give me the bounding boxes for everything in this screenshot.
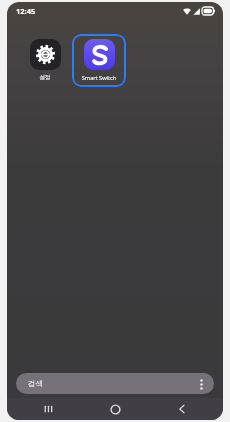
button[interactable]: Home bbox=[89, 398, 141, 420]
staticText: 12:45 bbox=[16, 6, 36, 16]
staticText: 설정 bbox=[20, 74, 70, 81]
button[interactable]: Recent apps bbox=[22, 398, 74, 420]
button[interactable]: Smart Switch bbox=[72, 34, 126, 87]
staticText: Smart Switch bbox=[74, 74, 124, 82]
button[interactable]: More options bbox=[193, 376, 209, 392]
staticText: 검색 bbox=[28, 379, 43, 388]
button[interactable]: 검색 bbox=[16, 373, 214, 394]
button[interactable]: Back bbox=[156, 398, 208, 420]
button[interactable]: 설정 bbox=[18, 34, 72, 86]
